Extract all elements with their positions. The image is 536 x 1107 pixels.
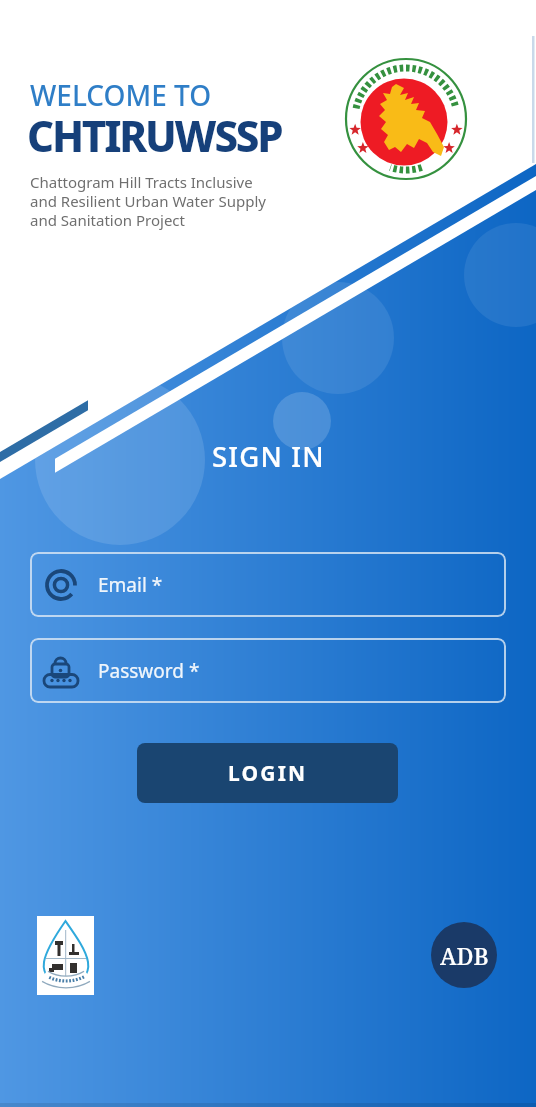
staticText: Email * xyxy=(98,572,163,598)
staticText: WELCOME TO xyxy=(30,76,212,114)
staticText: Password * xyxy=(98,658,200,684)
button[interactable]: Email * xyxy=(30,552,506,617)
staticText: ADB xyxy=(440,940,489,971)
staticText: SIGN IN xyxy=(212,438,325,475)
staticText: CHTIRUWSSP xyxy=(27,107,282,164)
button[interactable]: LOGIN xyxy=(137,743,398,803)
button[interactable]: Password * xyxy=(30,638,506,703)
button[interactable]: ADB xyxy=(431,922,497,988)
staticText: Chattogram Hill Tracts Inclusive and Res… xyxy=(30,172,266,230)
staticText: LOGIN xyxy=(228,759,308,788)
